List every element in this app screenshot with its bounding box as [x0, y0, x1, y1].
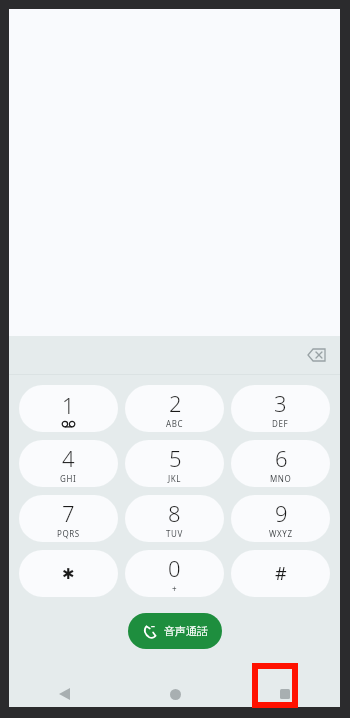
- staticText: +: [172, 583, 177, 594]
- staticText: ABC: [166, 418, 184, 429]
- button[interactable]: #: [231, 550, 330, 597]
- button[interactable]: 5: [125, 440, 224, 487]
- staticText: 1: [62, 390, 75, 420]
- staticText: GHI: [60, 473, 77, 484]
- staticText: TUV: [166, 528, 183, 539]
- button[interactable]: Backspace: [301, 340, 331, 370]
- button[interactable]: 2: [125, 385, 224, 432]
- button[interactable]: Home: [120, 681, 230, 707]
- staticText: 6: [275, 443, 288, 473]
- button[interactable]: 7: [19, 495, 118, 542]
- button[interactable]: 0: [125, 550, 224, 597]
- button[interactable]: Recent apps: [230, 681, 340, 707]
- button[interactable]: 9: [231, 495, 330, 542]
- staticText: MNO: [270, 473, 292, 484]
- staticText: WXYZ: [269, 528, 293, 539]
- button[interactable]: 音声通話: [128, 613, 222, 649]
- staticText: #: [275, 561, 287, 586]
- staticText: 音声通話: [164, 624, 208, 638]
- button[interactable]: ✱: [19, 550, 118, 597]
- button[interactable]: 8: [125, 495, 224, 542]
- staticText: 5: [169, 443, 182, 473]
- staticText: 9: [275, 498, 288, 528]
- staticText: 7: [62, 498, 75, 528]
- staticText: JKL: [168, 473, 182, 484]
- staticText: 4: [62, 443, 75, 473]
- button[interactable]: 3: [231, 385, 330, 432]
- staticText: PQRS: [57, 528, 80, 539]
- staticText: DEF: [272, 418, 289, 429]
- staticText: 8: [168, 498, 181, 528]
- staticText: 2: [169, 388, 182, 418]
- button[interactable]: 1: [19, 385, 118, 432]
- button[interactable]: 4: [19, 440, 118, 487]
- staticText: 0: [168, 553, 181, 583]
- staticText: ✱: [62, 565, 75, 582]
- button[interactable]: Back: [9, 681, 120, 707]
- button[interactable]: 6: [231, 440, 330, 487]
- staticText: 3: [274, 388, 287, 418]
